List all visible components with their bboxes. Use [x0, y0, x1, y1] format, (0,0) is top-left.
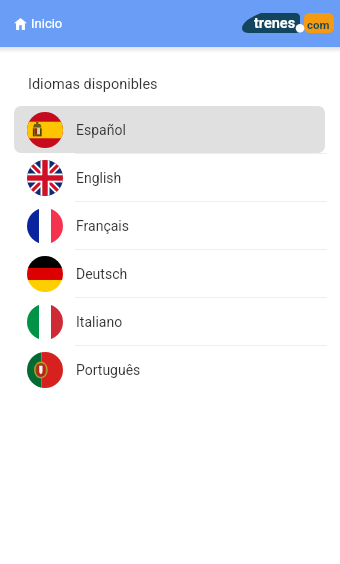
staticText: com	[307, 18, 330, 31]
button[interactable]: Français	[0, 202, 340, 250]
staticText: Inicio	[31, 16, 63, 31]
button[interactable]: trenes.com	[242, 13, 334, 33]
button[interactable]: Español	[0, 106, 340, 154]
staticText: English	[76, 170, 122, 186]
button[interactable]: Italiano	[0, 298, 340, 346]
staticText: Português	[76, 362, 141, 378]
staticText: Deutsch	[76, 266, 128, 282]
button[interactable]: Inicio	[14, 16, 63, 31]
staticText: Italiano	[76, 314, 123, 330]
button[interactable]: Deutsch	[0, 250, 340, 298]
button[interactable]: English	[0, 154, 340, 202]
staticText: trenes	[254, 15, 296, 32]
staticText: Español	[76, 122, 126, 138]
staticText: Idiomas disponibles	[28, 76, 158, 93]
button[interactable]: Português	[0, 346, 340, 394]
staticText: Français	[76, 218, 129, 234]
